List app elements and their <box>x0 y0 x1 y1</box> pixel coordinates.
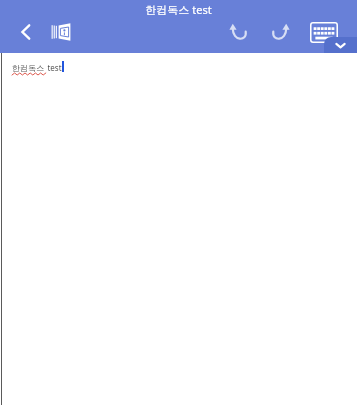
button[interactable]: Keyboard <box>307 17 341 47</box>
staticText: 한컴독스 <box>12 63 44 73</box>
button[interactable]: Redo <box>265 17 295 47</box>
button[interactable]: Back <box>11 17 41 47</box>
button[interactable]: 한컴독스 <box>12 62 64 73</box>
staticText: 한컴독스 test <box>145 2 212 17</box>
button[interactable]: Expand toolbar <box>324 37 357 54</box>
button[interactable]: Hancom Docs <box>46 17 76 47</box>
staticText: test <box>47 62 62 73</box>
button[interactable]: Undo <box>223 17 253 47</box>
